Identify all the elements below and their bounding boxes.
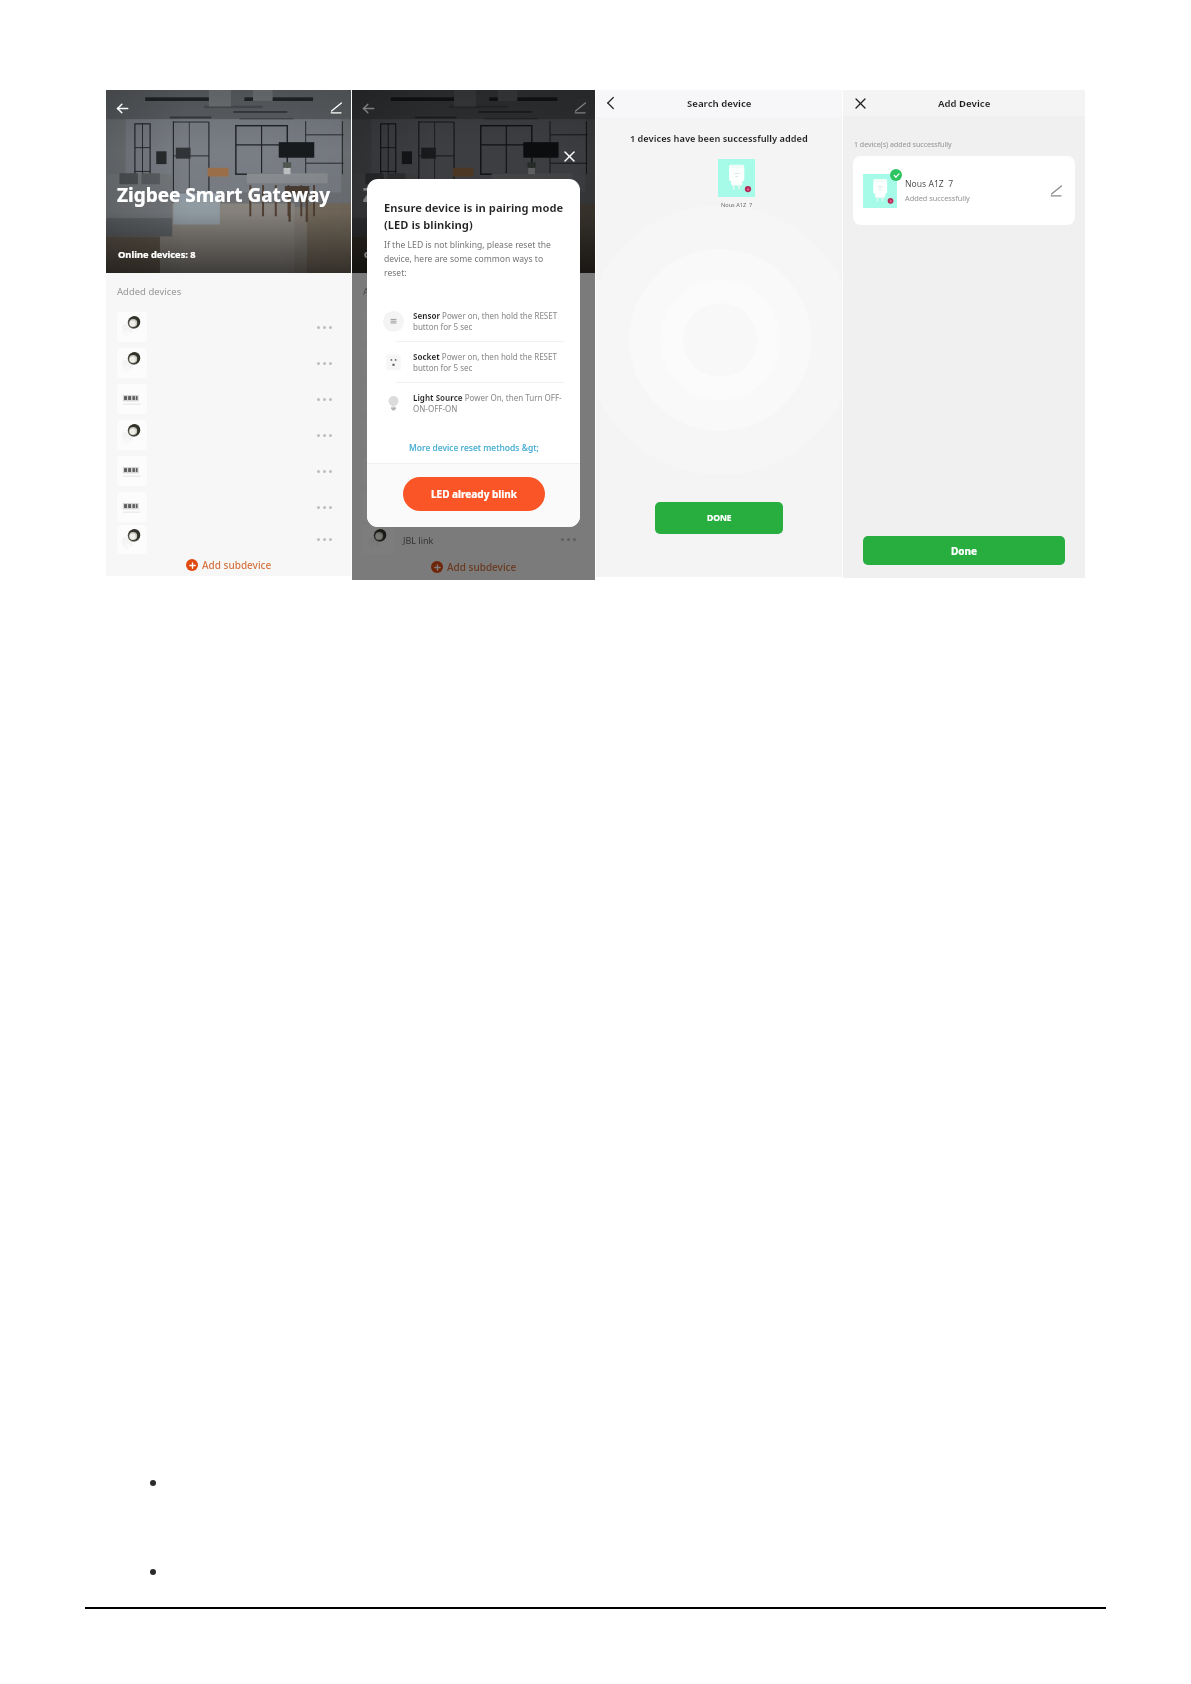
staticText: Done (951, 544, 978, 558)
button[interactable]: Add subdevice (106, 554, 351, 576)
button[interactable]: Back (112, 98, 132, 118)
button[interactable] (106, 453, 351, 489)
button[interactable] (106, 417, 351, 453)
button[interactable] (106, 489, 351, 525)
button[interactable]: More device reset methods &gt; (367, 437, 580, 459)
staticText: More device reset methods &gt; (409, 442, 539, 454)
button[interactable]: Back (602, 94, 619, 111)
button[interactable]: JBL link (352, 525, 595, 554)
staticText: Zigbee Smart Gateway (117, 182, 331, 208)
button[interactable] (352, 345, 595, 381)
button[interactable]: Close (560, 147, 578, 165)
staticText: Add subdevice (202, 558, 272, 572)
button[interactable]: Done (863, 536, 1065, 565)
staticText: Socket Power on, then hold the RESET but… (413, 351, 567, 374)
staticText: Online devices: 8 (364, 248, 442, 261)
staticText: DONE (707, 512, 732, 524)
button[interactable]: Nous A1Z 7 (853, 156, 1075, 225)
staticText: Nous A1Z 7 (721, 201, 753, 209)
staticText: If the LED is not blinking, please reset… (384, 239, 567, 279)
staticText: Zigbee Smart Gateway (363, 182, 577, 208)
staticText: Add Device (938, 97, 991, 110)
staticText: Ensure device is in pairing mode (LED is… (384, 200, 564, 233)
button[interactable]: LED already blink (403, 477, 545, 511)
staticText: Added successfully (905, 193, 970, 203)
button[interactable]: Edit (570, 98, 590, 118)
staticText: LED already blink (431, 487, 517, 501)
button[interactable] (352, 453, 595, 489)
button[interactable] (106, 525, 351, 554)
button[interactable]: Edit (326, 98, 346, 118)
staticText: Added devices (117, 285, 182, 298)
staticText: Sensor Power on, then hold the RESET but… (413, 310, 567, 333)
button[interactable]: Add subdevice (352, 554, 595, 580)
button[interactable]: Rename (1047, 182, 1065, 200)
staticText: JBL link (403, 534, 434, 546)
button[interactable]: Back (358, 98, 378, 118)
staticText: Nous A1Z 7 (905, 178, 954, 190)
staticText: Online devices: 8 (118, 248, 196, 261)
staticText: Added devices (363, 285, 428, 298)
button[interactable] (106, 309, 351, 345)
staticText: 1 devices have been successfully added (630, 132, 808, 144)
button[interactable] (352, 309, 595, 345)
button[interactable] (106, 345, 351, 381)
staticText: Search device (687, 97, 752, 110)
staticText: Add subdevice (447, 560, 517, 574)
button[interactable] (352, 381, 595, 417)
button[interactable] (106, 381, 351, 417)
button[interactable]: Close (851, 94, 869, 112)
button[interactable] (352, 417, 595, 453)
button[interactable]: DONE (655, 502, 783, 534)
button[interactable] (352, 489, 595, 525)
staticText: Light Source Power On, then Turn OFF-ON-… (413, 392, 567, 415)
staticText: 1 device(s) added successfully (854, 140, 952, 150)
